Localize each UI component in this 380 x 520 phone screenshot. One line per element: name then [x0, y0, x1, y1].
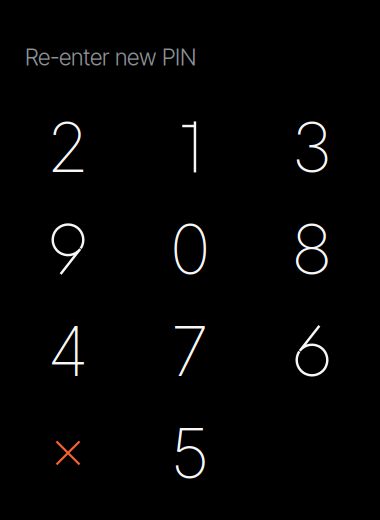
button[interactable]: 2	[7, 96, 129, 198]
button[interactable]: 6	[251, 300, 373, 402]
button[interactable]: Cancel	[7, 402, 129, 504]
button[interactable]: 0	[129, 198, 251, 300]
staticText: 4	[47, 309, 88, 392]
button[interactable]: 5	[129, 402, 251, 504]
staticText: 0	[170, 207, 210, 290]
button[interactable]: 7	[129, 300, 251, 402]
button[interactable]: 4	[7, 300, 129, 402]
staticText: 5	[170, 411, 209, 494]
button[interactable]: 1	[129, 96, 251, 198]
staticText: 8	[291, 207, 332, 290]
staticText: 2	[47, 105, 89, 188]
staticText: Re-enter new PIN	[25, 43, 196, 71]
button[interactable]: 9	[7, 198, 129, 300]
button[interactable]: 3	[251, 96, 373, 198]
staticText: 3	[291, 105, 333, 188]
staticText: 7	[171, 309, 208, 392]
button[interactable]: 8	[251, 198, 373, 300]
